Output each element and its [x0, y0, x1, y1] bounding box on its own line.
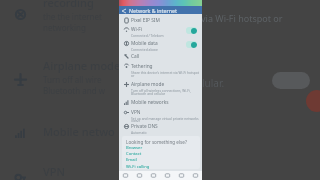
staticText: Tethering — [131, 63, 153, 70]
button[interactable]: recording — [0, 0, 320, 38]
other: Back — [122, 9, 126, 13]
button[interactable]: Mobile data — [119, 40, 202, 54]
button[interactable]: Private DNS — [119, 123, 202, 136]
staticText: Looking for something else? — [126, 139, 187, 145]
staticText: Browser — [126, 145, 143, 151]
button[interactable]: More — [188, 171, 202, 180]
staticText: Contact — [126, 151, 142, 157]
button[interactable]: Wi-Fi calling — [122, 164, 200, 169]
button[interactable]: Recents — [146, 171, 160, 180]
staticText: via Wi-Fi hotspot or — [201, 12, 283, 24]
button[interactable]: Browser — [122, 145, 200, 151]
button[interactable]: Airplane mode switch — [272, 72, 310, 89]
button[interactable]: Toggle Mobile data — [186, 41, 197, 48]
staticText: Email — [126, 157, 137, 163]
button[interactable]: Toggle Wi-Fi — [186, 27, 197, 34]
staticText: Pixel EIP SIM — [131, 17, 160, 24]
button[interactable]: Home — [132, 171, 146, 180]
staticText: Airplane mode — [43, 58, 121, 73]
staticText: Mobile networks — [131, 99, 169, 106]
staticText: Wi-Fi calling — [126, 164, 150, 169]
button[interactable]: Mobile networks — [119, 99, 202, 109]
staticText: lular. — [202, 76, 225, 90]
staticText: Network & internet — [129, 7, 177, 14]
staticText: Turn off all wireless connections, Wi-Fi… — [131, 88, 191, 96]
button[interactable]: Apps — [160, 171, 174, 180]
staticText: Call — [131, 53, 140, 60]
staticText: Airplane mode — [131, 81, 165, 88]
staticText: Wi-Fi — [131, 26, 142, 33]
button[interactable]: Email — [122, 157, 200, 163]
button[interactable]: Back — [119, 171, 132, 180]
button[interactable]: Wi-Fi — [119, 26, 202, 40]
staticText: recording — [43, 0, 94, 10]
button[interactable]: Action — [306, 90, 320, 112]
staticText: Connected above — [131, 47, 158, 51]
button[interactable]: Airplane mode — [119, 81, 202, 97]
staticText: Private DNS — [131, 123, 158, 130]
button[interactable]: Search — [174, 171, 188, 180]
button[interactable]: VPN — [119, 109, 202, 122]
button[interactable]: Contact — [122, 151, 200, 157]
staticText: VPN — [131, 109, 141, 116]
button[interactable]: Mobile netwo — [0, 0, 320, 16]
button[interactable]: VPN — [0, 0, 320, 16]
staticText: Set up and manage virtual private networ… — [131, 116, 199, 122]
button[interactable]: Call — [119, 53, 202, 63]
staticText: Mobile data — [131, 40, 158, 47]
button[interactable]: Back — [119, 6, 202, 14]
staticText: Automatic — [131, 130, 147, 134]
staticText: Connected / Telekom — [131, 33, 164, 37]
button[interactable]: Airplane mode — [0, 0, 320, 38]
staticText: Share this device's internet via Wi-Fi h… — [131, 70, 199, 78]
button[interactable]: Tethering — [119, 63, 202, 79]
button[interactable]: Pixel EIP SIM — [119, 17, 202, 27]
